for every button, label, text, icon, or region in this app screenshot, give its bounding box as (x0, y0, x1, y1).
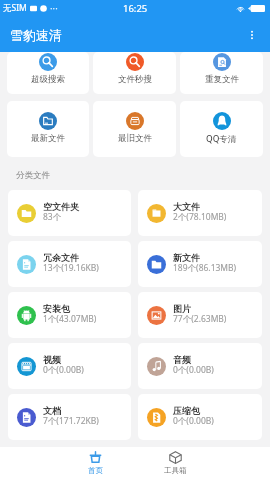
staticText: 文件秒搜 (118, 74, 152, 85)
button[interactable]: 超级搜索 (7, 52, 89, 94)
button[interactable]: 新文件 (138, 241, 262, 287)
staticText: 83个 (43, 211, 62, 223)
staticText: 视频 (43, 354, 61, 365)
staticText: 工具箱 (164, 466, 187, 475)
staticText: 文档 (43, 405, 61, 416)
button[interactable]: 压缩包 (138, 394, 262, 440)
button[interactable]: 文件秒搜 (93, 52, 176, 94)
button[interactable]: 最新文件 (7, 101, 89, 157)
button[interactable]: 文档 (8, 394, 131, 440)
staticText: QQ专清 (206, 133, 237, 145)
staticText: 2个(78.10MB) (173, 211, 227, 223)
staticText: 首页 (88, 466, 103, 475)
staticText: 图片 (173, 303, 191, 314)
staticText: 大文件 (173, 201, 200, 212)
staticText: 1个(43.07MB) (43, 313, 97, 325)
staticText: 分类文件 (16, 170, 50, 181)
staticText: 安装包 (43, 303, 70, 314)
button[interactable]: 空文件夹 (8, 190, 131, 236)
staticText: 0个(0.00B) (173, 415, 214, 427)
button[interactable]: 安装包 (8, 292, 131, 338)
staticText: 13个(19.16KB) (43, 262, 99, 274)
button[interactable]: 首页 (55, 447, 135, 480)
staticText: 冗余文件 (43, 252, 79, 263)
staticText: 最旧文件 (118, 133, 152, 144)
staticText: 0个(0.00B) (173, 364, 214, 376)
staticText: 最新文件 (31, 133, 65, 144)
button[interactable]: 工具箱 (135, 447, 215, 480)
button[interactable]: 视频 (8, 343, 131, 389)
staticText: 7个(171.72KB) (43, 415, 99, 427)
staticText: 16:25 (123, 2, 148, 15)
staticText: 雪豹速清 (10, 27, 62, 43)
button[interactable]: 音频 (138, 343, 262, 389)
staticText: 77个(2.63MB) (173, 313, 227, 325)
button[interactable]: More options (240, 23, 264, 47)
button[interactable]: 最旧文件 (93, 101, 176, 157)
button[interactable]: 冗余文件 (8, 241, 131, 287)
staticText: 空文件夹 (43, 201, 79, 212)
staticText: 无SIM (3, 2, 27, 14)
button[interactable]: 大文件 (138, 190, 262, 236)
button[interactable]: 图片 (138, 292, 262, 338)
staticText: 压缩包 (173, 405, 200, 416)
staticText: 重复文件 (205, 74, 239, 85)
staticText: 超级搜索 (31, 74, 65, 85)
staticText: 0个(0.00B) (43, 364, 84, 376)
button[interactable]: QQ专清 (180, 101, 263, 157)
staticText: 新文件 (173, 252, 200, 263)
staticText: 音频 (173, 354, 191, 365)
staticText: 189个(86.13MB) (173, 262, 237, 274)
button[interactable]: 重复文件 (180, 52, 263, 94)
